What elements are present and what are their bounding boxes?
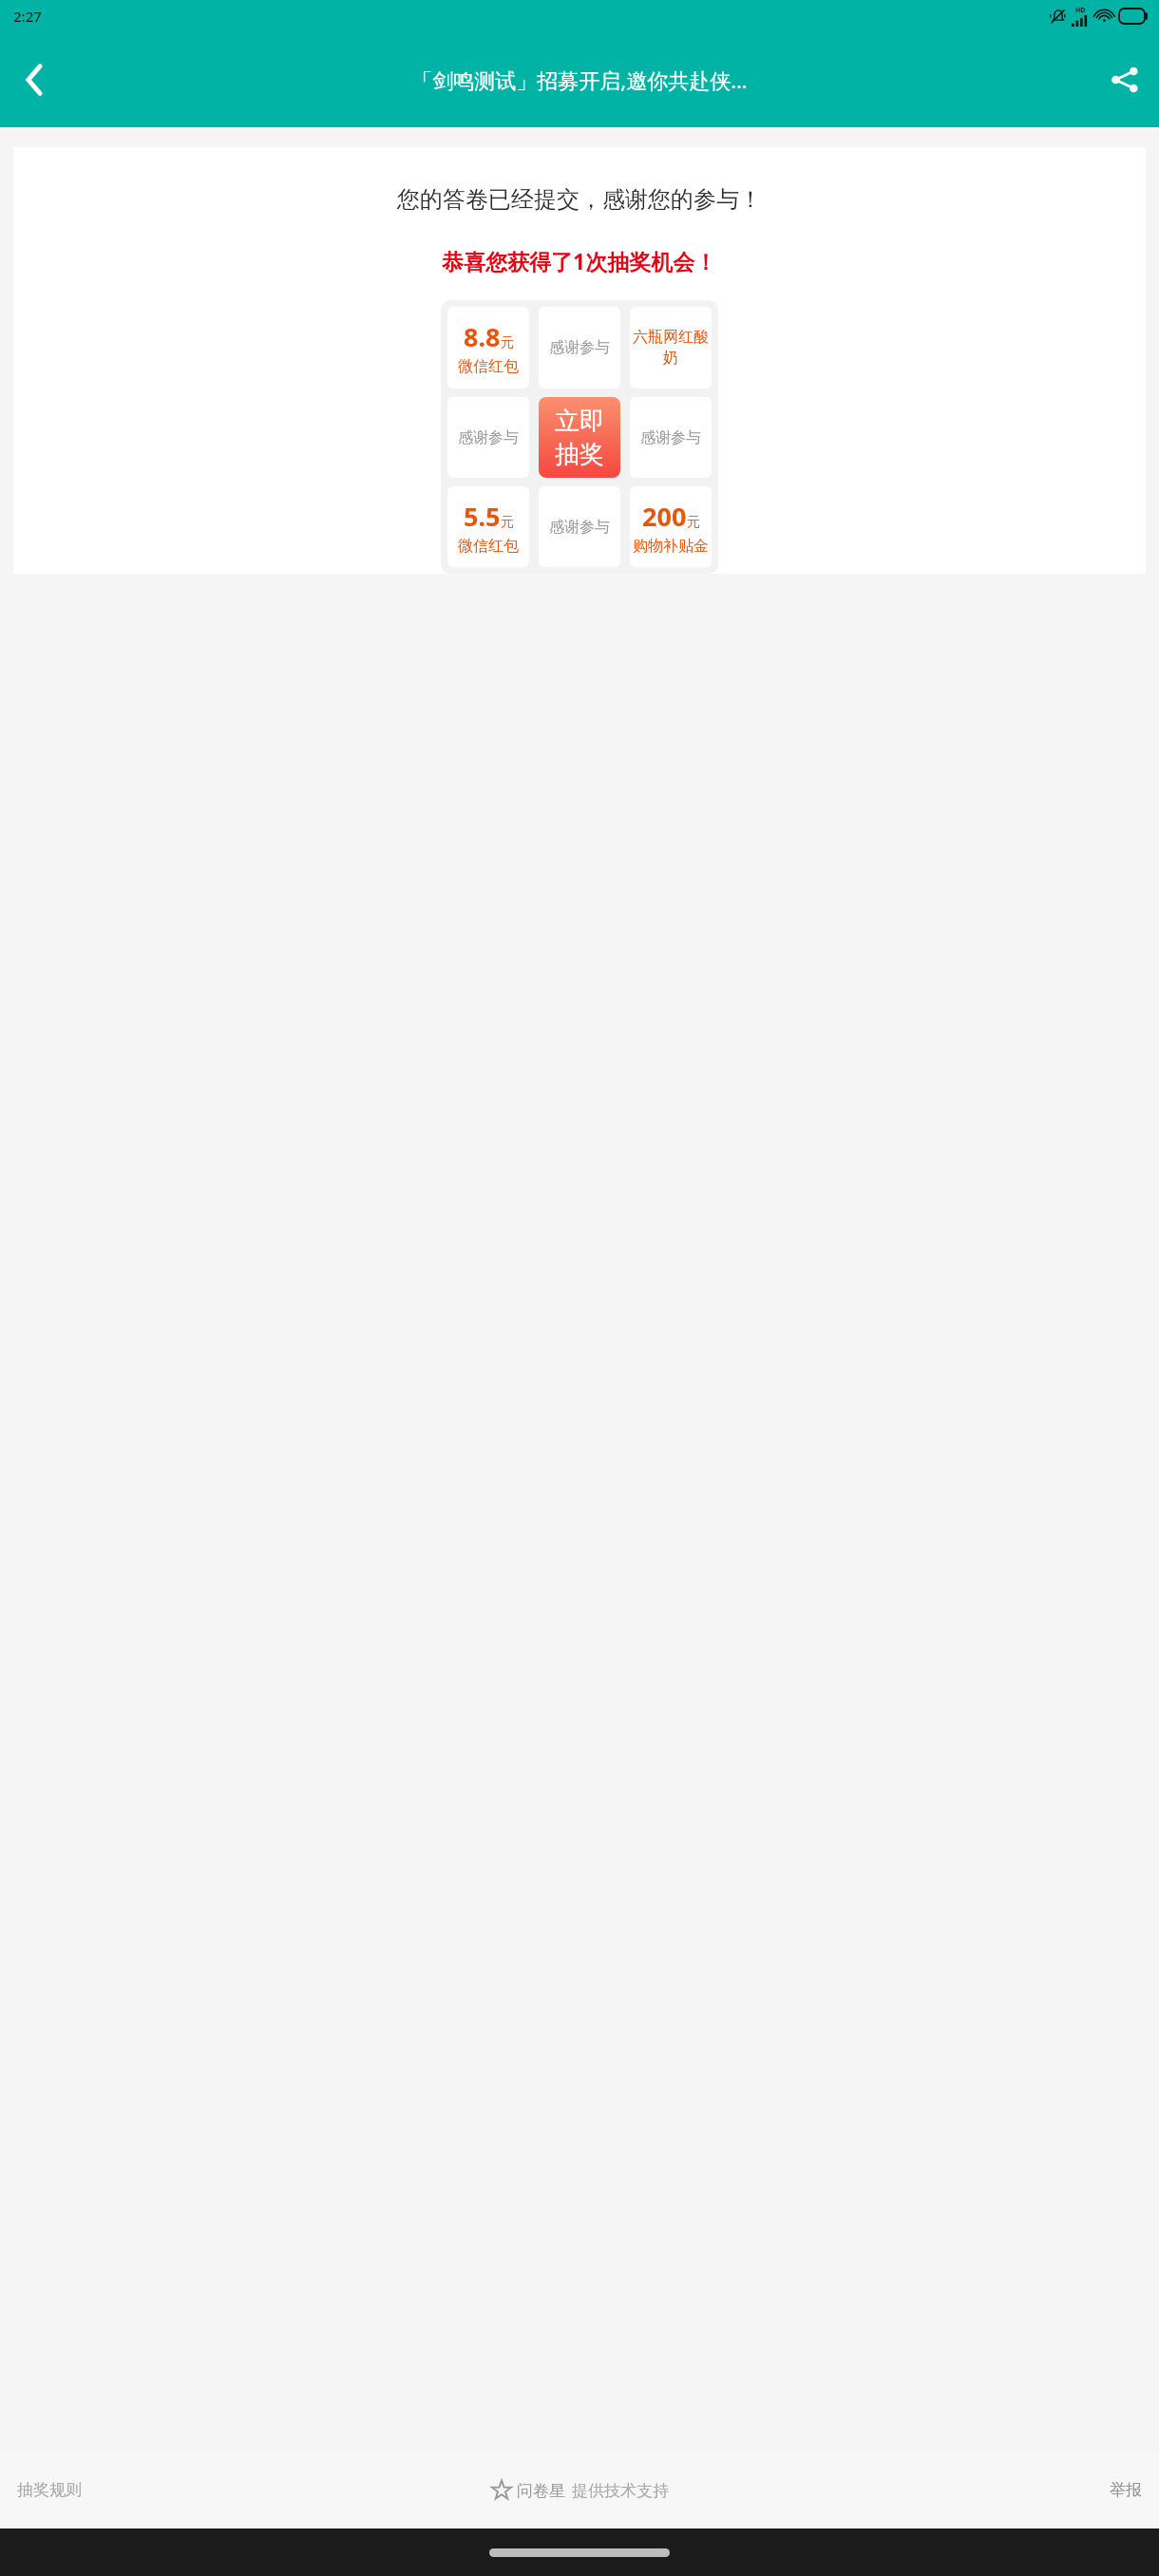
staticText: 元 xyxy=(501,334,514,351)
button[interactable]: 200 xyxy=(630,486,712,567)
button[interactable]: 感谢参与 xyxy=(447,397,529,478)
button[interactable]: Back xyxy=(8,53,61,106)
staticText: 元 xyxy=(687,514,700,531)
staticText: 8.8 xyxy=(464,319,501,354)
button[interactable]: 感谢参与 xyxy=(630,397,712,478)
staticText: 2:27 xyxy=(13,7,42,26)
staticText: 微信红包 xyxy=(458,537,519,556)
staticText: 您的答卷已经提交，感谢您的参与！ xyxy=(397,185,762,214)
staticText: 感谢参与 xyxy=(549,338,610,357)
button[interactable]: 举报 xyxy=(1110,2480,1142,2500)
button[interactable]: Share xyxy=(1098,53,1151,106)
button[interactable]: 感谢参与 xyxy=(539,307,620,388)
button[interactable]: 感谢参与 xyxy=(539,486,620,567)
staticText: 问卷星 xyxy=(517,2481,565,2501)
button[interactable]: 六瓶网红酸奶 xyxy=(630,307,712,388)
staticText: 提供技术支持 xyxy=(572,2481,669,2501)
staticText: 立即 xyxy=(555,406,604,437)
button[interactable]: 5.5 xyxy=(447,486,529,567)
staticText: 购物补贴金 xyxy=(633,537,709,556)
staticText: 「剑鸣测试」招募开启,邀你共赴侠… xyxy=(411,66,748,94)
staticText: 恭喜您获得了1次抽奖机会！ xyxy=(442,246,717,275)
staticText: 感谢参与 xyxy=(640,428,701,447)
staticText: 抽奖 xyxy=(555,439,604,470)
button[interactable]: 8.8 xyxy=(447,307,529,388)
staticText: 感谢参与 xyxy=(458,428,519,447)
staticText: HD xyxy=(1075,6,1086,15)
staticText: 5.5 xyxy=(464,499,501,534)
other: Star xyxy=(491,2480,512,2501)
staticText: 感谢参与 xyxy=(549,518,610,537)
staticText: 微信红包 xyxy=(458,357,519,376)
button[interactable]: Star xyxy=(491,2480,669,2501)
button[interactable]: 立即 xyxy=(539,397,620,478)
staticText: 元 xyxy=(501,514,514,531)
staticText: 六瓶网红酸奶 xyxy=(630,328,712,368)
button[interactable]: 抽奖规则 xyxy=(17,2480,82,2500)
staticText: 200 xyxy=(642,499,687,534)
